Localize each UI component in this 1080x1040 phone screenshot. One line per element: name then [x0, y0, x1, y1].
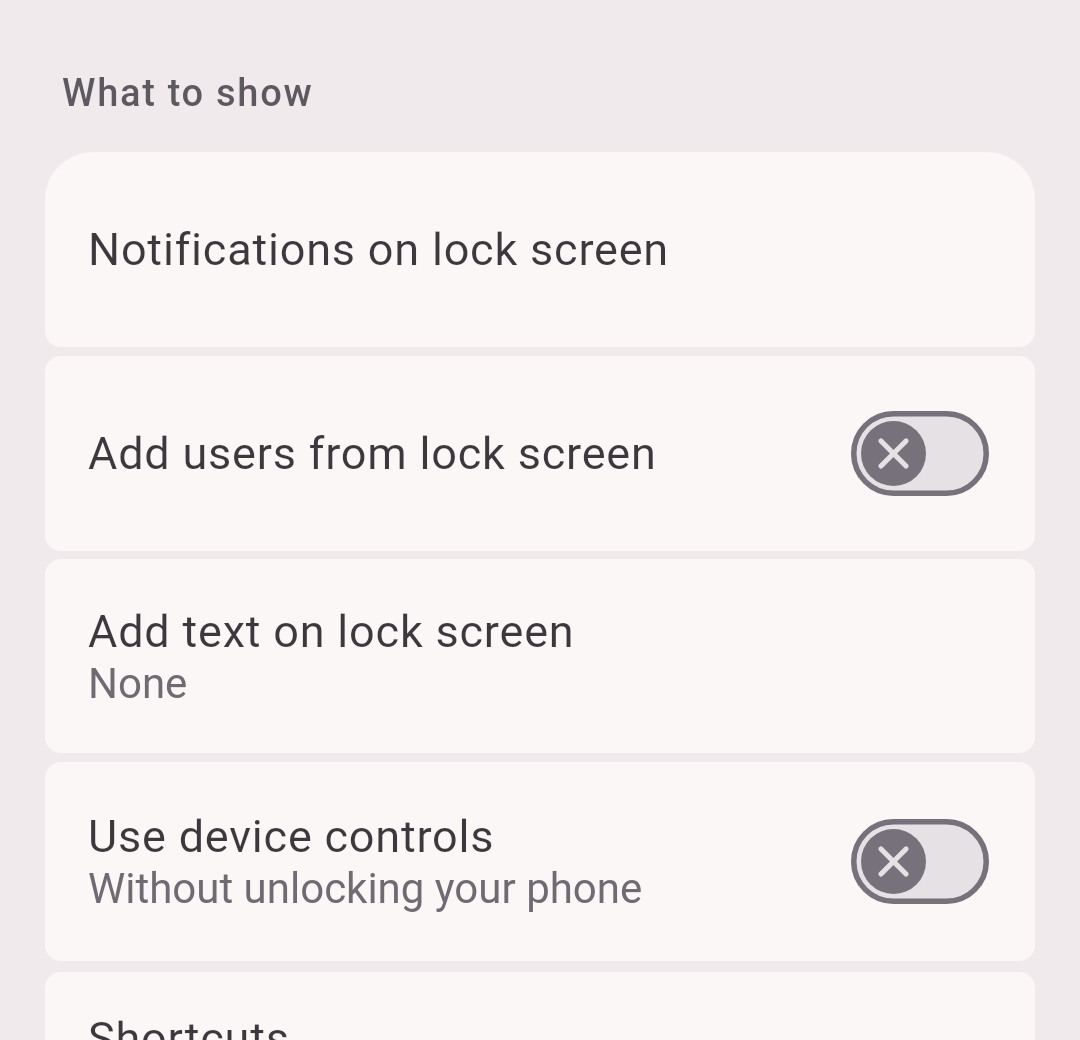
staticText: What to show: [62, 71, 314, 116]
button[interactable]: Use device controls: [45, 762, 1035, 961]
staticText: Shortcuts: [88, 1012, 290, 1040]
staticText: Notifications on lock screen: [88, 223, 670, 276]
button[interactable]: Add users from lock screen: [45, 356, 1035, 551]
staticText: Add users from lock screen: [88, 427, 657, 480]
staticText: Add text on lock screen: [88, 605, 575, 658]
staticText: Without unlocking your phone: [88, 864, 643, 913]
button[interactable]: Add text on lock screen: [45, 559, 1035, 753]
button[interactable]: Shortcuts: [45, 972, 1035, 1040]
button[interactable]: Notifications on lock screen: [45, 152, 1035, 347]
staticText: Use device controls: [88, 810, 495, 863]
button[interactable]: [851, 819, 989, 904]
button[interactable]: [851, 411, 989, 496]
staticText: None: [88, 659, 188, 708]
